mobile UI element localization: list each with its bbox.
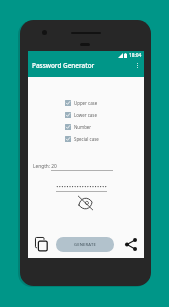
staticText: Password Generator [32,61,95,70]
button[interactable]: GENERATE [56,237,114,252]
button[interactable]: Number [65,121,113,133]
button[interactable]: Copy [35,237,48,252]
button[interactable]: Share [125,238,137,251]
staticText: GENERATE [74,242,96,248]
staticText: Number [74,124,92,130]
button[interactable]: Upper case [65,97,113,109]
staticText: 18:04 [129,52,142,59]
staticText: Special case [74,136,99,142]
staticText: Upper case [74,100,98,106]
button[interactable]: Toggle password visibility [78,196,93,210]
staticText: Length: 20 [33,163,57,170]
staticText: Lower case [74,112,97,118]
button[interactable]: More options [132,60,142,70]
button[interactable]: Special case [65,133,113,145]
button[interactable]: Lower case [65,109,113,121]
